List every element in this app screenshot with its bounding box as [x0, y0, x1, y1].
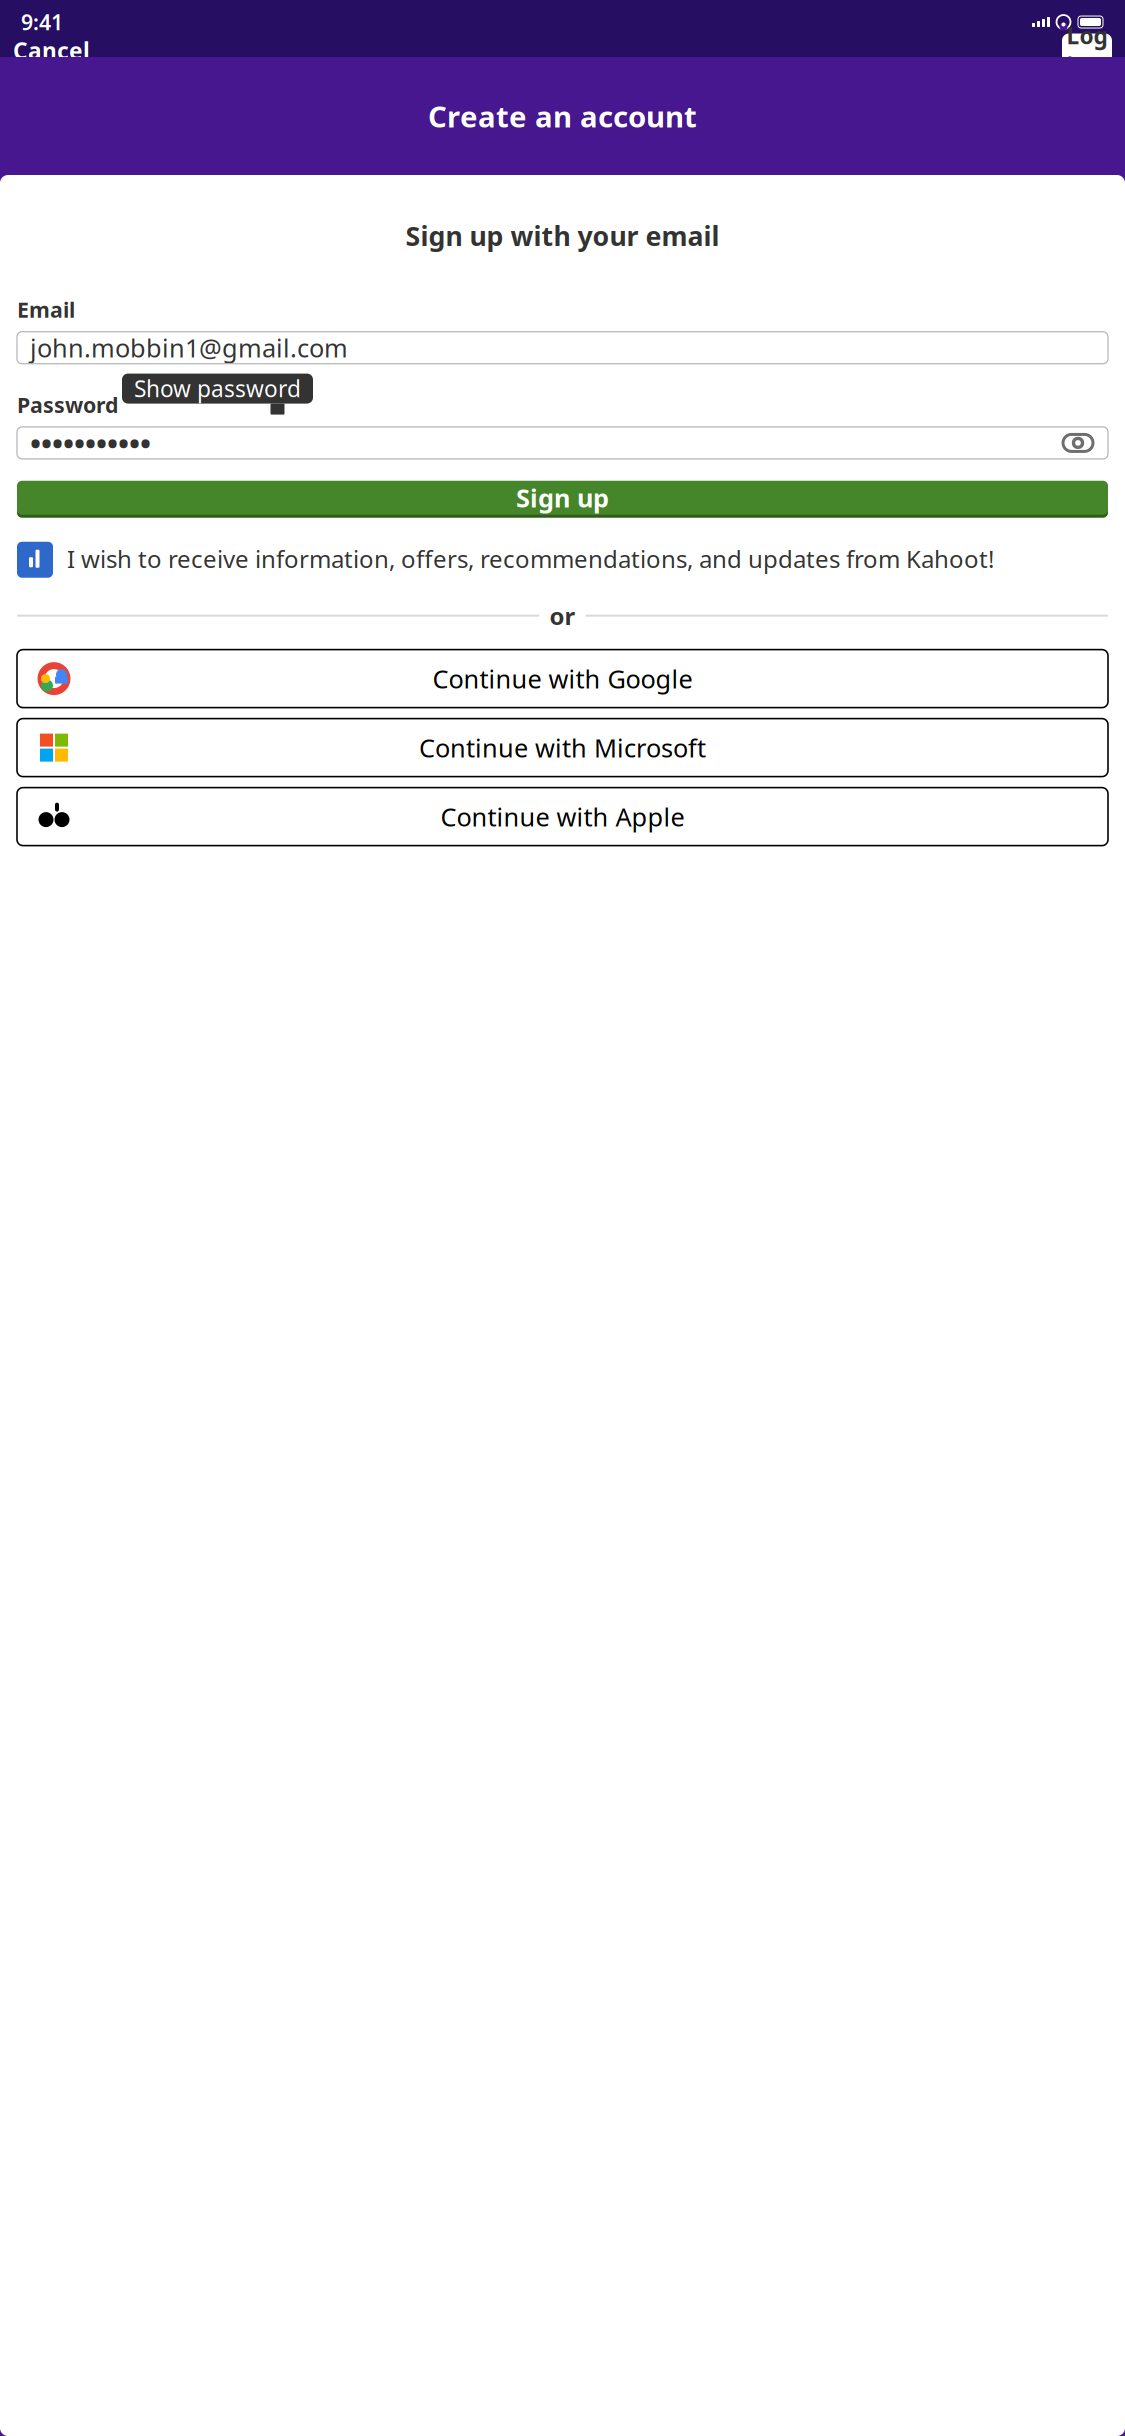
button[interactable]: Log in	[1062, 29, 1125, 71]
staticText: Cancel	[13, 35, 90, 65]
staticText: Sign up with your email	[405, 218, 719, 253]
staticText: •••••••••••	[30, 423, 151, 462]
staticText: 9:41	[21, 8, 63, 36]
staticText: I wish to receive information, offers, r…	[67, 543, 994, 575]
staticText: john.mobbin1@gmail.com	[30, 331, 348, 364]
staticText: Continue with Google	[432, 662, 692, 695]
staticText: Create an account	[428, 96, 697, 135]
staticText: Continue with Microsoft	[419, 731, 706, 764]
button[interactable]: Continue with Apple	[0, 788, 1125, 846]
button[interactable]: Continue with Microsoft	[0, 719, 1125, 777]
staticText: Password	[17, 391, 118, 419]
staticText: Email	[17, 295, 75, 324]
button[interactable]: Cancel	[0, 27, 103, 73]
button[interactable]: Continue with Google	[0, 650, 1125, 708]
staticText: Log in	[1066, 20, 1107, 81]
button[interactable]: I wish to receive information, offers, r…	[0, 518, 1125, 578]
staticText: or	[549, 600, 575, 632]
staticText: Sign up	[516, 481, 609, 514]
staticText: Continue with Apple	[440, 800, 684, 833]
staticText: Show password	[134, 373, 301, 404]
button[interactable]: Show password	[1061, 428, 1095, 458]
button[interactable]: Sign up	[0, 478, 1125, 518]
